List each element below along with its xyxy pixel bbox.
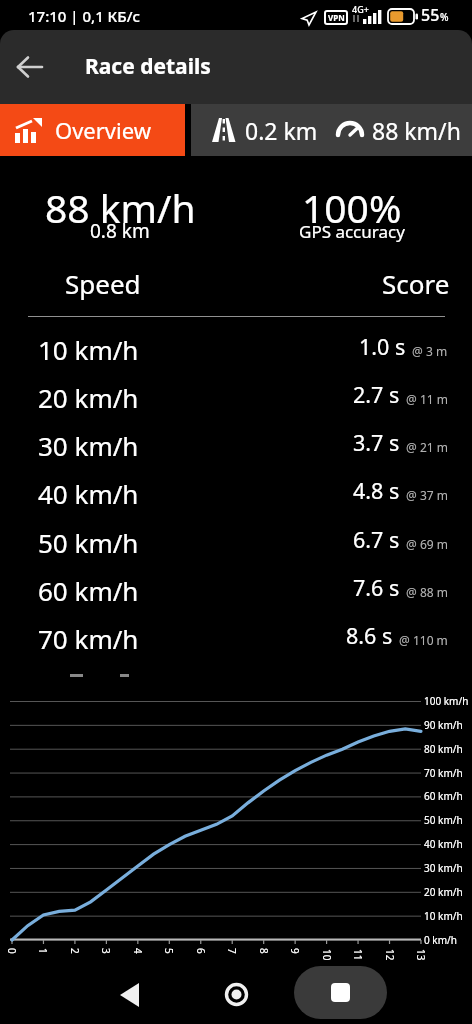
button[interactable] bbox=[212, 972, 260, 1016]
staticText: @ 110 m bbox=[399, 632, 448, 648]
staticText: 17:10 | 0,1 КБ/с bbox=[28, 6, 140, 26]
staticText: 60 km/h bbox=[424, 789, 463, 803]
button[interactable]: 30 km/h bbox=[38, 428, 448, 457]
staticText: VPN bbox=[328, 12, 345, 23]
staticText: @ 3 m bbox=[412, 343, 448, 359]
staticText: 13 bbox=[414, 949, 428, 961]
staticText: 20 km/h bbox=[38, 380, 139, 409]
staticText: Overview bbox=[55, 115, 151, 145]
staticText: 0 km/h bbox=[424, 933, 457, 947]
staticText: 11 bbox=[351, 949, 365, 961]
button[interactable]: 60 km/h bbox=[38, 573, 448, 602]
button[interactable] bbox=[6, 43, 54, 91]
staticText: 7.6 s bbox=[353, 573, 400, 602]
staticText: 3.7 s bbox=[353, 428, 400, 457]
staticText: 30 km/h bbox=[38, 428, 139, 457]
staticText: 6.7 s bbox=[353, 525, 400, 554]
staticText: @ 37 m bbox=[406, 487, 448, 503]
staticText: 88 km/h bbox=[372, 115, 461, 146]
staticText: GPS accuracy bbox=[299, 220, 405, 243]
staticText: 4 bbox=[131, 948, 145, 954]
staticText: 1 bbox=[36, 948, 50, 954]
button[interactable]: 50 km/h bbox=[38, 525, 448, 554]
staticText: 5 bbox=[162, 948, 176, 954]
staticText: % bbox=[440, 10, 449, 24]
button[interactable]: 70 km/h bbox=[38, 621, 448, 650]
staticText: 20 km/h bbox=[424, 885, 463, 899]
staticText: 8.6 s bbox=[346, 621, 393, 650]
staticText: 90 km/h bbox=[424, 718, 463, 732]
button[interactable] bbox=[105, 975, 153, 1015]
button[interactable]: 10 km/h bbox=[38, 332, 448, 361]
staticText: 70 km/h bbox=[424, 766, 463, 780]
staticText: @ 11 m bbox=[406, 391, 448, 407]
staticText: 50 km/h bbox=[424, 813, 463, 827]
staticText: 10 km/h bbox=[38, 332, 139, 361]
staticText: 9 bbox=[288, 948, 302, 954]
staticText: 100% bbox=[302, 181, 402, 234]
staticText: @ 88 m bbox=[406, 584, 448, 600]
staticText: 40 km/h bbox=[424, 837, 463, 851]
staticText: 70 km/h bbox=[38, 621, 139, 650]
staticText: 2 bbox=[68, 948, 82, 954]
staticText: 88 km/h bbox=[45, 181, 196, 234]
staticText: 40 km/h bbox=[38, 476, 139, 505]
button[interactable] bbox=[294, 966, 387, 1019]
staticText: Speed bbox=[65, 266, 141, 301]
staticText: 50 km/h bbox=[38, 525, 139, 554]
staticText: 12 bbox=[383, 949, 397, 961]
staticText: 10 km/h bbox=[424, 909, 463, 923]
staticText: 55 bbox=[421, 4, 440, 26]
staticText: 0.8 km bbox=[90, 218, 150, 244]
staticText: 30 km/h bbox=[424, 861, 463, 875]
staticText: 4.8 s bbox=[353, 476, 400, 505]
staticText: 6 bbox=[194, 948, 208, 954]
staticText: 60 km/h bbox=[38, 573, 139, 602]
staticText: 80 km/h bbox=[424, 742, 463, 756]
staticText: 1.0 s bbox=[359, 332, 406, 361]
staticText: 100 km/h bbox=[424, 694, 469, 708]
staticText: 10 bbox=[320, 949, 334, 961]
staticText: 2.7 s bbox=[353, 380, 400, 409]
button[interactable]: 0.2 km bbox=[191, 104, 472, 156]
staticText: Race details bbox=[85, 52, 211, 81]
staticText: 7 bbox=[225, 948, 239, 954]
staticText: @ 21 m bbox=[406, 439, 448, 455]
staticText: 8 bbox=[257, 948, 271, 954]
staticText: 0 bbox=[5, 948, 19, 954]
staticText: @ 69 m bbox=[406, 536, 448, 552]
button[interactable]: 40 km/h bbox=[38, 476, 448, 505]
staticText: 0.2 km bbox=[245, 115, 318, 146]
staticText: Score bbox=[382, 266, 450, 301]
staticText: 4G+ bbox=[352, 3, 369, 15]
button[interactable]: 20 km/h bbox=[38, 380, 448, 409]
staticText: 3 bbox=[99, 948, 113, 954]
button[interactable]: Overview bbox=[0, 104, 185, 156]
